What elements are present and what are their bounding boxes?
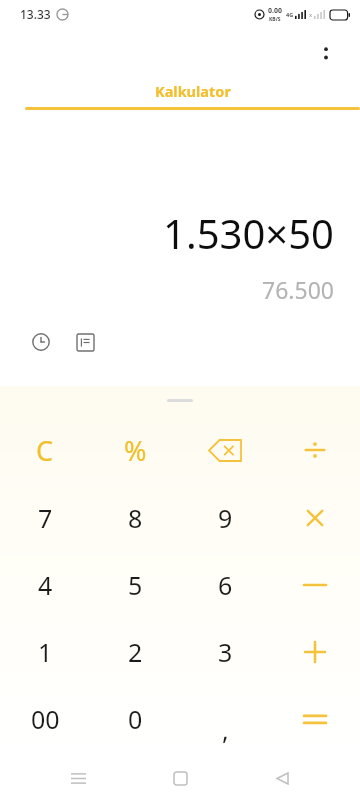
button[interactable]: Kalkulator [25, 81, 360, 110]
staticText: 8 [128, 501, 143, 535]
staticText: % [124, 432, 147, 469]
staticText: KB/S [269, 16, 281, 23]
button[interactable]: Multiply [270, 484, 360, 551]
button[interactable]: Notes [70, 327, 100, 357]
staticText: 0 [128, 702, 143, 736]
button[interactable]: 4 [0, 551, 90, 618]
button[interactable]: 7 [0, 484, 90, 551]
staticText: 6 [218, 568, 233, 602]
button[interactable]: Backspace [180, 416, 270, 484]
staticText: 9 [218, 501, 233, 535]
button[interactable]: Back [258, 756, 306, 800]
staticText: 13.33 [20, 6, 51, 22]
staticText: 7 [38, 501, 53, 535]
staticText: Kalkulator [155, 81, 231, 101]
button[interactable]: 1 [0, 618, 90, 685]
button[interactable]: 8 [90, 484, 180, 551]
button[interactable]: 3 [180, 618, 270, 685]
staticText: x [309, 11, 313, 19]
button[interactable]: 00 [0, 685, 90, 752]
button[interactable]: Minus [270, 551, 360, 618]
button[interactable]: Plus [270, 618, 360, 685]
button[interactable]: Divide [270, 416, 360, 484]
button[interactable]: 6 [180, 551, 270, 618]
staticText: 5 [128, 568, 143, 602]
staticText: 2 [128, 635, 143, 669]
staticText: C [36, 432, 54, 469]
staticText: 1 [38, 635, 53, 669]
button[interactable]: 5 [90, 551, 180, 618]
button[interactable]: 9 [180, 484, 270, 551]
button[interactable]: , [180, 685, 270, 752]
button[interactable]: 2 [90, 618, 180, 685]
staticText: 4 [38, 568, 53, 602]
button[interactable]: Recents [54, 756, 102, 800]
staticText: 4G [286, 11, 294, 18]
staticText: 3 [218, 635, 233, 669]
button[interactable]: % [90, 416, 180, 484]
button[interactable]: More options [306, 34, 346, 74]
button[interactable]: History [26, 327, 56, 357]
button[interactable]: Home [156, 756, 204, 800]
button[interactable]: C [0, 416, 90, 484]
button[interactable]: Equals [270, 685, 360, 752]
staticText: 00 [31, 702, 60, 736]
button[interactable]: 0 [90, 685, 180, 752]
staticText: , [222, 713, 229, 747]
staticText: 76.500 [262, 274, 334, 305]
staticText: 0.00 [268, 6, 282, 16]
staticText: 1.530×50 [163, 206, 334, 260]
